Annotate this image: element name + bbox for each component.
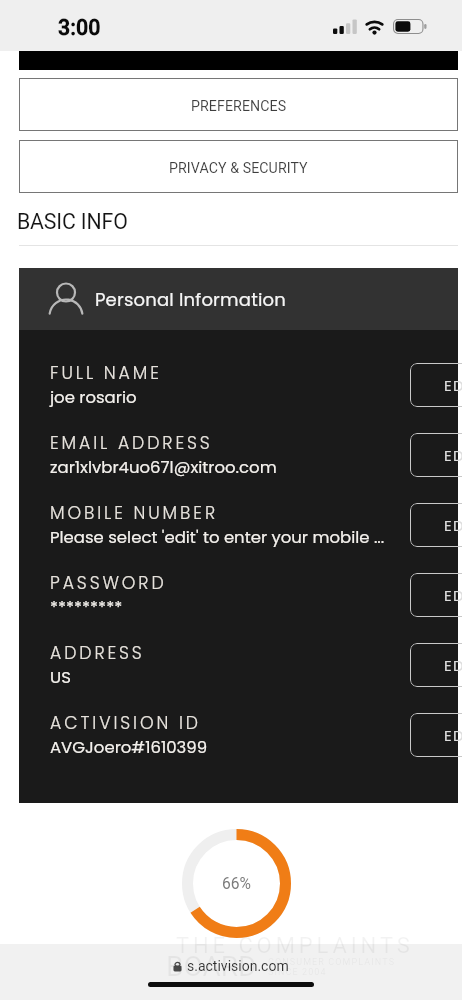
staticText: CONSUMER COMPLAINTS: [268, 957, 396, 968]
other: Personal information: [48, 281, 84, 317]
button[interactable]: EDIT: [410, 713, 462, 757]
staticText: 3:00: [58, 15, 101, 40]
staticText: *********: [50, 596, 123, 619]
staticText: zar1xlvbr4uo67l@xitroo.com: [50, 456, 277, 479]
button[interactable]: EDIT: [410, 643, 462, 687]
staticText: EDIT: [444, 515, 462, 536]
staticText: EDIT: [444, 375, 462, 396]
staticText: ACTIVISION ID: [50, 711, 201, 735]
staticText: PREFERENCES: [191, 98, 287, 115]
staticText: AVGJoero#1610399: [50, 736, 208, 759]
staticText: EDIT: [444, 725, 462, 746]
staticText: PRIVACY & SECURITY: [169, 160, 308, 177]
staticText: EDIT: [444, 445, 462, 466]
staticText: SINCE 2004: [268, 967, 327, 978]
staticText: BOARD: [166, 950, 257, 983]
button[interactable]: EDIT: [410, 433, 462, 477]
staticText: PASSWORD: [50, 571, 167, 595]
button[interactable]: PRIVACY & SECURITY: [19, 140, 458, 193]
button[interactable]: PREFERENCES: [19, 78, 458, 131]
staticText: EDIT: [444, 585, 462, 606]
button[interactable]: EDIT: [410, 363, 462, 407]
button[interactable]: EDIT: [410, 573, 462, 617]
staticText: EDIT: [444, 655, 462, 676]
staticText: THE COMPLAINTS: [176, 933, 414, 959]
staticText: Please select 'edit' to enter your mobil…: [50, 526, 385, 549]
staticText: EMAIL ADDRESS: [50, 431, 213, 455]
staticText: ADDRESS: [50, 641, 145, 665]
button[interactable]: EDIT: [410, 503, 462, 547]
staticText: FULL NAME: [50, 361, 162, 385]
staticText: MOBILE NUMBER: [50, 501, 218, 525]
staticText: Personal Information: [95, 287, 286, 312]
staticText: US: [50, 666, 71, 689]
staticText: s.activision.com: [187, 958, 289, 974]
staticText: 66%: [222, 875, 251, 893]
staticText: joe rosario: [50, 386, 137, 409]
staticText: BASIC INFO: [17, 209, 128, 234]
